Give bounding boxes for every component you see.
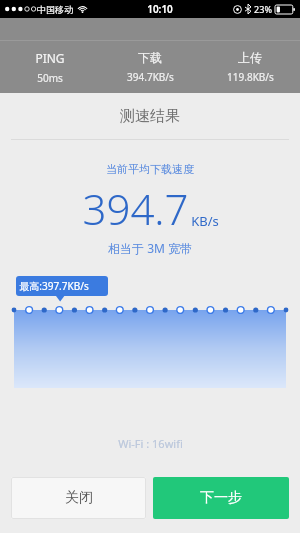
- button[interactable]: 下载: [100, 41, 200, 93]
- staticText: 394.7: [82, 180, 189, 237]
- staticText: 中国移动: [37, 4, 73, 15]
- staticText: 当前平均下载速度: [106, 162, 194, 176]
- staticText: 下一步: [200, 489, 242, 507]
- staticText: 最高:397.7KB/s: [19, 279, 89, 293]
- staticText: 50ms: [37, 71, 63, 85]
- staticText: 关闭: [65, 489, 93, 507]
- button[interactable]: PING: [0, 41, 100, 93]
- staticText: 相当于 3M 宽带: [108, 240, 192, 256]
- button[interactable]: 上传: [200, 41, 300, 93]
- staticText: KB/s: [191, 212, 219, 230]
- staticText: 测速结果: [120, 107, 180, 126]
- staticText: 10:10: [147, 2, 173, 16]
- staticText: 23%: [254, 3, 272, 15]
- staticText: Wi-Fi : 16wifi: [118, 436, 183, 451]
- staticText: 394.7KB/s: [127, 70, 174, 84]
- staticText: 下载: [138, 50, 162, 65]
- staticText: 上传: [238, 50, 262, 65]
- staticText: 119.8KB/s: [227, 70, 274, 84]
- staticText: PING: [35, 50, 65, 66]
- button[interactable]: 下一步: [153, 477, 289, 519]
- button[interactable]: 关闭: [11, 477, 146, 519]
